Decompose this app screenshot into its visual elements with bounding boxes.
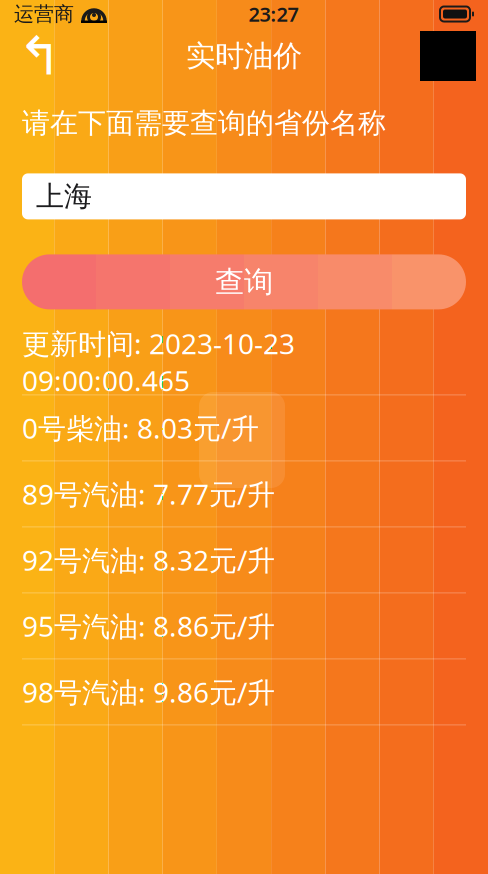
button[interactable]: 查询: [0, 254, 488, 309]
staticText: 更新时间: 2023-10-23 09:00:00.465: [22, 325, 295, 399]
staticText: 上海: [36, 179, 92, 214]
staticText: ↰: [17, 26, 62, 86]
staticText: 实时油价: [186, 38, 302, 74]
staticText: 92号汽油: 8.32元/升: [22, 541, 275, 578]
staticText: 95号汽油: 8.86元/升: [22, 607, 275, 644]
staticText: 0号柴油: 8.03元/升: [22, 409, 259, 446]
button[interactable]: 返回: [12, 31, 68, 81]
staticText: 98号汽油: 9.86元/升: [22, 673, 275, 710]
staticText: 查询: [215, 264, 273, 300]
staticText: 23:27: [248, 1, 298, 27]
staticText: 89号汽油: 7.77元/升: [22, 475, 275, 512]
staticText: 运营商: [14, 2, 74, 26]
staticText: 请在下面需要查询的省份名称: [22, 106, 386, 140]
